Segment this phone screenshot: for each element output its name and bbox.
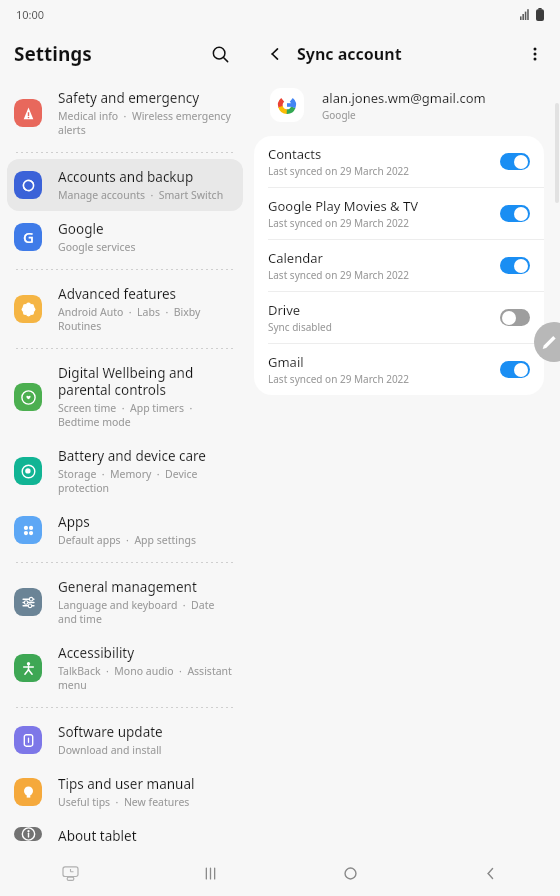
staticText: Android Auto · Labs · Bixby Routines [58,305,233,333]
staticText: G [23,227,34,247]
button[interactable]: Keyboard [53,856,87,890]
button[interactable]: Software update [7,714,243,766]
button[interactable]: Recents [193,856,227,890]
button[interactable]: Edit [534,322,560,362]
button[interactable]: Drive [254,292,544,343]
staticText: Accounts and backup [58,168,194,186]
button[interactable]: Contacts [254,136,544,187]
button[interactable]: Apps [7,504,243,556]
staticText: Last synced on 29 March 2022 [268,372,410,386]
button[interactable]: Battery and device care [7,438,243,504]
button[interactable]: Tips and user manual [7,766,243,818]
button[interactable]: Advanced features [7,276,243,342]
button[interactable]: Search [204,38,236,70]
staticText: Download and install [58,743,162,757]
staticText: Manage accounts · Smart Switch [58,188,224,202]
staticText: Storage · Memory · Device protection [58,467,233,495]
staticText: Tips and user manual [58,775,195,793]
button[interactable]: On [500,205,530,222]
button[interactable]: Back [260,39,290,69]
staticText: Battery and device care [58,447,206,465]
button[interactable]: About tablet [7,818,243,850]
staticText: Apps [58,513,90,531]
button[interactable]: On [500,361,530,378]
button[interactable]: On [500,153,530,170]
staticText: alan.jones.wm@gmail.com [322,89,486,107]
button[interactable]: Gmail [254,344,544,395]
staticText: Google services [58,240,136,254]
staticText: Safety and emergency [58,89,200,107]
button[interactable]: Back [473,856,507,890]
staticText: Last synced on 29 March 2022 [268,216,410,230]
staticText: Screen time · App timers · Bedtime mode [58,401,233,429]
staticText: 10:00 [16,7,45,22]
staticText: Sync account [297,43,402,65]
staticText: Gmail [268,353,304,371]
staticText: Language and keyboard · Date and time [58,598,233,626]
staticText: Advanced features [58,285,177,303]
button[interactable]: Safety and emergency [7,80,243,146]
staticText: Digital Wellbeing and parental controls [58,364,233,399]
button[interactable]: General management [7,569,243,635]
staticText: Medical info · Wireless emergency alerts [58,109,233,137]
staticText: Contacts [268,145,322,163]
button[interactable]: On [500,257,530,274]
staticText: Last synced on 29 March 2022 [268,164,410,178]
button[interactable]: Calendar [254,240,544,291]
staticText: Useful tips · New features [58,795,190,809]
staticText: Google [322,108,356,122]
staticText: Default apps · App settings [58,533,196,547]
button[interactable]: Off [500,309,530,326]
staticText: Sync disabled [268,320,332,334]
button[interactable]: Home [333,856,367,890]
button[interactable]: Google Play Movies & TV [254,188,544,239]
staticText: Last synced on 29 March 2022 [268,268,410,282]
staticText: Google Play Movies & TV [268,197,418,215]
button[interactable]: Accessibility [7,635,243,701]
staticText: Google [58,220,104,238]
button[interactable]: Digital Wellbeing and parental controls [7,355,243,438]
button[interactable]: More options [520,39,550,69]
button[interactable]: G [7,211,243,263]
staticText: Settings [14,41,92,67]
button[interactable]: alan.jones.wm@gmail.com [250,80,560,136]
staticText: Drive [268,301,301,319]
staticText: TalkBack · Mono audio · Assistant menu [58,664,233,692]
staticText: Accessibility [58,644,135,662]
staticText: Calendar [268,249,323,267]
staticText: General management [58,578,197,596]
button[interactable]: Accounts and backup [7,159,243,211]
staticText: About tablet [58,827,137,841]
staticText: Software update [58,723,163,741]
